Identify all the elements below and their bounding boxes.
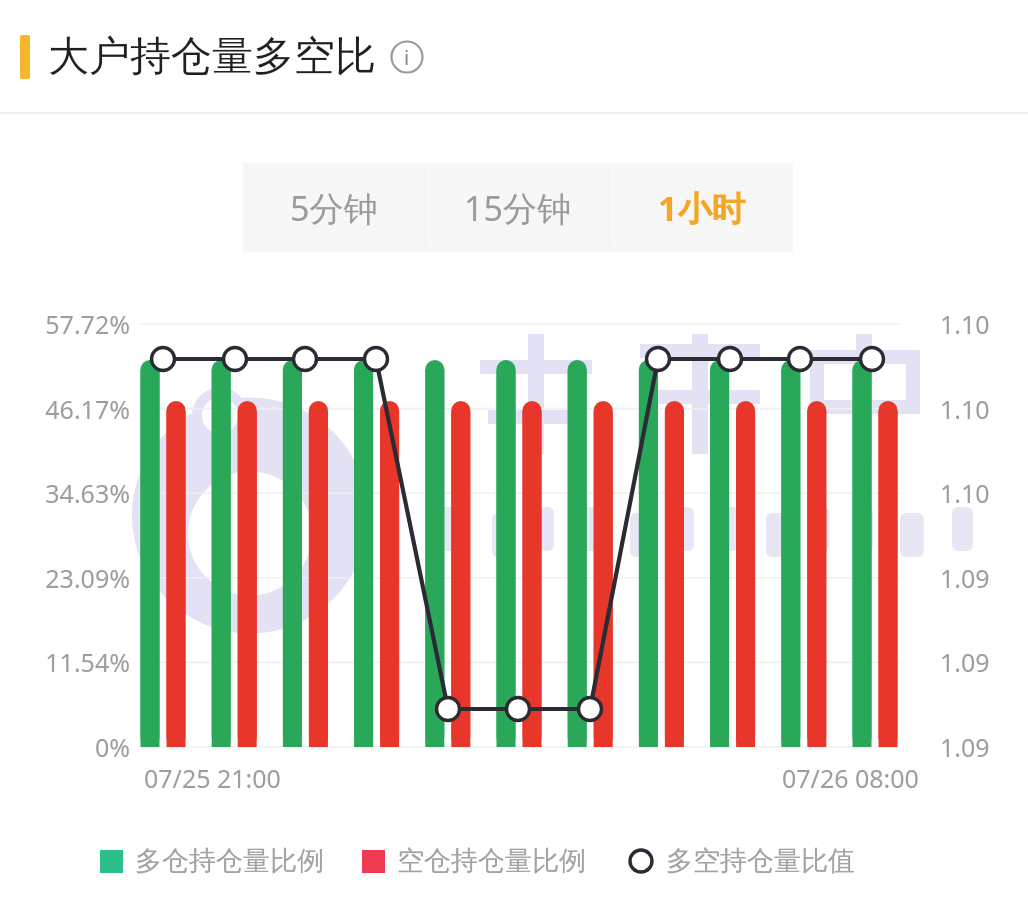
staticText: 23.09% <box>0 561 130 595</box>
button[interactable]: Info <box>390 40 424 74</box>
staticText: 多仓持仓量比例 <box>135 844 324 878</box>
staticText: i <box>404 44 410 71</box>
button[interactable]: 多仓持仓量比例 <box>100 844 324 878</box>
button[interactable]: 空仓持仓量比例 <box>362 844 586 878</box>
staticText: 07/25 21:00 <box>144 761 281 795</box>
staticText: 0% <box>0 730 130 764</box>
staticText: 空仓持仓量比例 <box>397 844 586 878</box>
staticText: 1.10 <box>940 307 990 341</box>
staticText: 11.54% <box>0 645 130 679</box>
staticText: 大户持仓量多空比 <box>48 31 376 83</box>
staticText: 46.17% <box>0 392 130 426</box>
button[interactable]: 5分钟 <box>243 163 425 252</box>
staticText: 57.72% <box>0 307 130 341</box>
staticText: 1小时 <box>658 185 746 231</box>
staticText: 多空持仓量比值 <box>666 844 855 878</box>
staticText: 15分钟 <box>464 185 571 231</box>
staticText: 1.09 <box>940 561 990 595</box>
staticText: 1.09 <box>940 730 990 764</box>
staticText: 07/26 08:00 <box>782 761 919 795</box>
staticText: 34.63% <box>0 476 130 510</box>
staticText: 1.10 <box>940 476 990 510</box>
staticText: 1.09 <box>940 645 990 679</box>
staticText: 5分钟 <box>290 185 378 231</box>
button[interactable]: 15分钟 <box>426 163 609 252</box>
button[interactable]: 1小时 <box>610 163 793 252</box>
staticText: 1.10 <box>940 392 990 426</box>
button[interactable]: 多空持仓量比值 <box>628 844 855 878</box>
